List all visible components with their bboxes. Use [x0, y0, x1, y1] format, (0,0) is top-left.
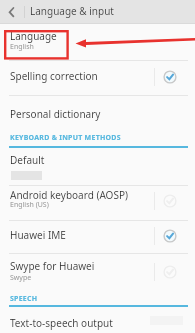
staticText: SPEECH — [10, 294, 38, 304]
button[interactable]: Enabled — [163, 229, 177, 243]
staticText: Spelling correction — [10, 69, 98, 83]
button[interactable]: Swype for Huawei — [0, 254, 195, 292]
staticText: English (US) — [10, 200, 49, 210]
button[interactable]: Android keyboard (AOSP) — [0, 186, 195, 220]
staticText: Android keyboard (AOSP) — [10, 188, 128, 202]
staticText: English — [10, 42, 34, 52]
button[interactable]: Disabled — [163, 265, 177, 279]
staticText: Text-to-speech output — [10, 316, 113, 330]
button[interactable]: Default — [0, 148, 195, 185]
staticText: KEYBOARD & INPUT METHODS — [10, 133, 121, 143]
button[interactable]: Huawei IME — [0, 221, 195, 253]
button[interactable]: Language — [0, 23, 195, 60]
button[interactable]: Enabled — [163, 70, 177, 84]
button[interactable]: Back — [0, 0, 23, 23]
staticText: Swype — [10, 273, 32, 283]
button[interactable]: Disabled — [163, 194, 177, 208]
staticText: Language & input — [30, 4, 114, 18]
button[interactable]: Text-to-speech output — [0, 310, 195, 333]
staticText: Default — [10, 153, 45, 167]
staticText: Swype for Huawei — [10, 259, 95, 273]
staticText: Huawei IME — [10, 228, 66, 242]
button[interactable]: Personal dictionary — [0, 96, 195, 130]
staticText: Personal dictionary — [10, 107, 101, 121]
button[interactable]: Spelling correction — [0, 61, 195, 95]
staticText: Language — [10, 29, 57, 43]
